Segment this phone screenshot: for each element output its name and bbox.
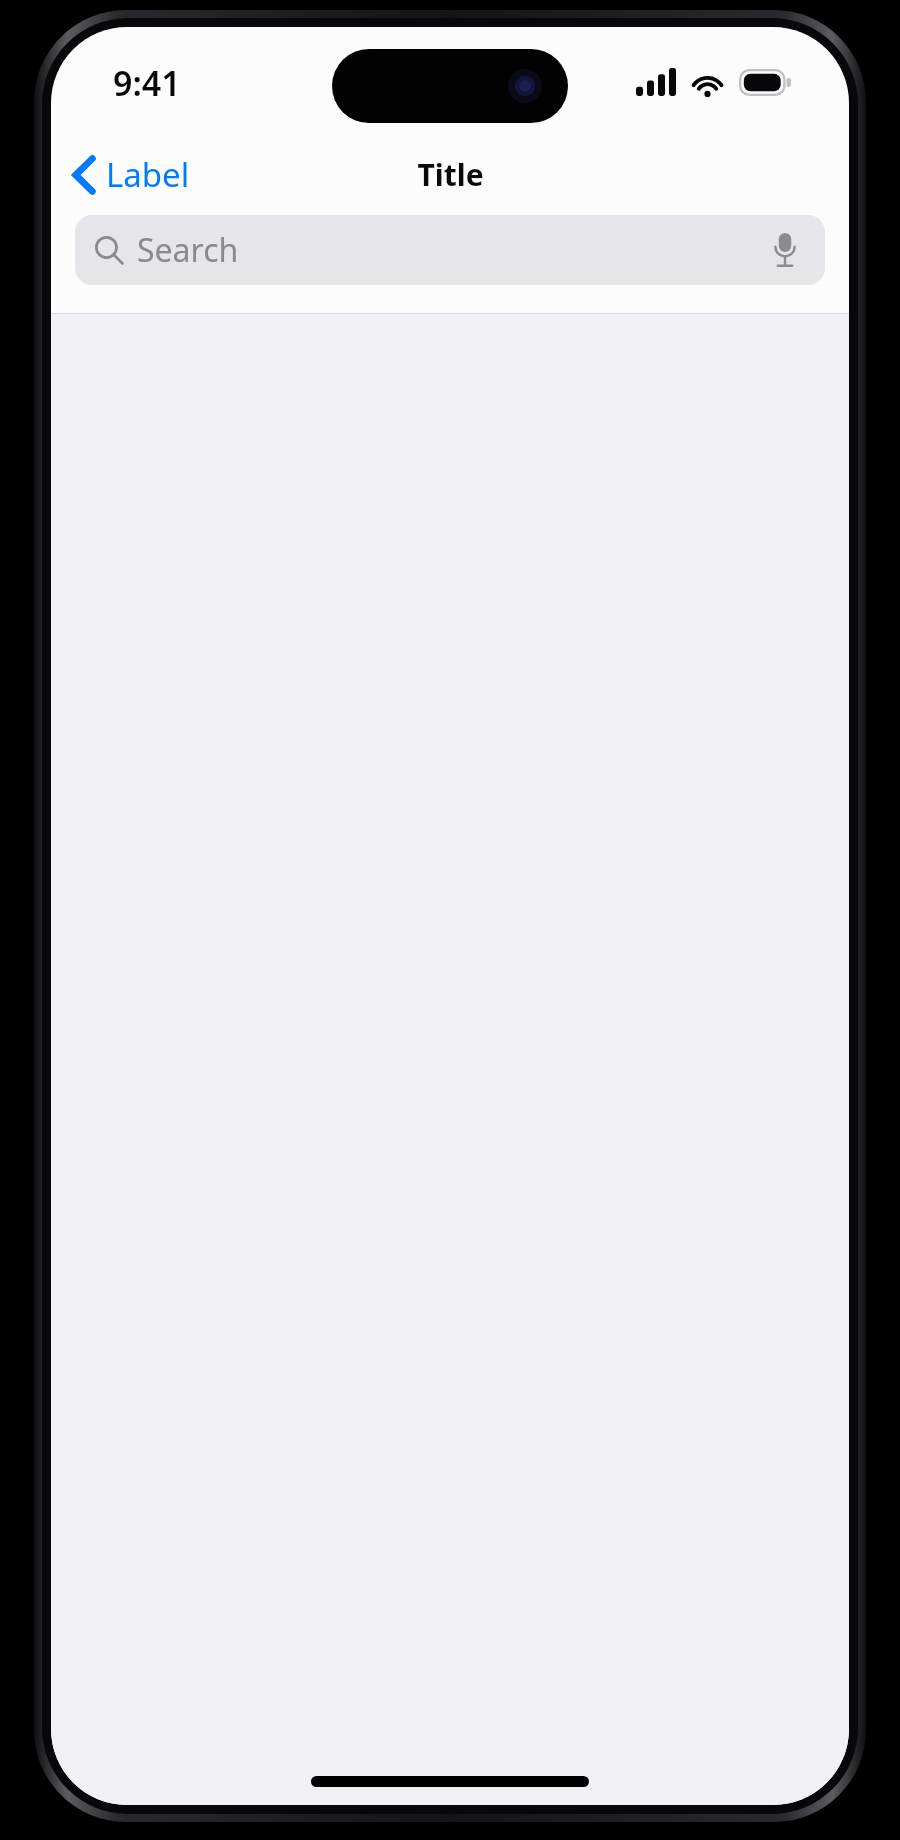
- staticText: 9:41: [113, 60, 181, 106]
- staticText: Label: [106, 152, 190, 197]
- button[interactable]: Voice search: [763, 228, 807, 272]
- button[interactable]: Search: [75, 215, 825, 285]
- staticText: Title: [417, 154, 484, 195]
- button[interactable]: Label: [65, 146, 202, 203]
- staticText: Search: [137, 228, 763, 272]
